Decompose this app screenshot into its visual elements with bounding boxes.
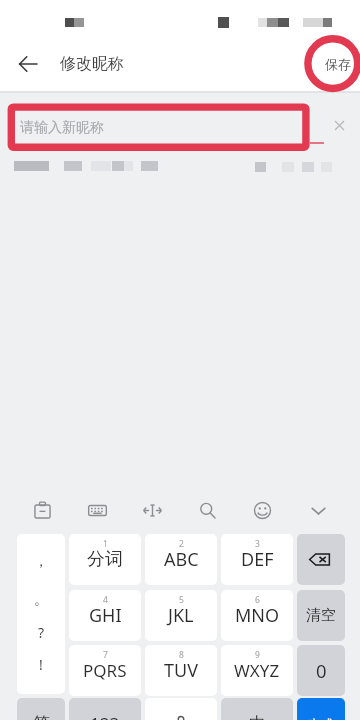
staticText: 5 [179, 594, 184, 606]
staticText: WXYZ [234, 659, 280, 682]
staticText: 123 [90, 712, 120, 720]
button[interactable]: Move cursor [130, 488, 174, 532]
staticText: 7 [103, 649, 108, 661]
staticText: 8 [179, 649, 184, 661]
staticText: DEF [241, 547, 274, 572]
button[interactable]: Backspace [297, 534, 345, 585]
button[interactable]: TUV [145, 645, 217, 696]
button[interactable]: 定式 [297, 698, 345, 720]
staticText: 符 [33, 713, 50, 720]
staticText: MNO [235, 603, 280, 628]
button[interactable]: Clipboard [20, 488, 64, 532]
staticText: 。 [34, 591, 48, 607]
button[interactable]: 中 [221, 698, 293, 720]
button[interactable]: Back [4, 40, 52, 88]
staticText: JKL [168, 603, 194, 628]
button[interactable]: Voice input [145, 698, 217, 720]
button[interactable]: Search [185, 488, 229, 532]
staticText: ABC [164, 547, 199, 572]
button[interactable]: Clear text [323, 109, 355, 141]
button[interactable]: 保存 [315, 35, 360, 92]
button[interactable]: 123 [69, 698, 141, 720]
staticText: 中 [249, 713, 266, 720]
staticText: 保存 [325, 56, 351, 72]
staticText: 修改昵称 [60, 54, 124, 74]
staticText: 3 [255, 538, 260, 550]
button[interactable]: Keyboard layout [75, 488, 119, 532]
button[interactable]: WXYZ [221, 645, 293, 696]
staticText: 0 [316, 658, 327, 683]
staticText: 请输入新昵称 [20, 119, 104, 137]
staticText: PQRS [83, 659, 127, 682]
button[interactable]: PQRS [69, 645, 141, 696]
staticText: 9 [255, 649, 260, 661]
staticText: GHI [89, 603, 122, 628]
staticText: 清空 [306, 606, 336, 625]
staticText: 定式 [308, 716, 334, 720]
button[interactable]: DEF [221, 534, 293, 585]
button[interactable]: 清空 [297, 590, 345, 641]
staticText: 4 [103, 594, 108, 606]
button[interactable]: 分词 [69, 534, 141, 585]
staticText: ! [39, 655, 43, 671]
staticText: 2 [179, 538, 184, 550]
button[interactable]: 符 [17, 698, 65, 720]
button[interactable]: ABC [145, 534, 217, 585]
button[interactable]: 0 [297, 645, 345, 696]
staticText: 分词 [87, 548, 123, 571]
button[interactable]: JKL [145, 590, 217, 641]
staticText: TUV [164, 658, 198, 683]
staticText: 1 [103, 538, 108, 550]
staticText: 6 [255, 594, 260, 606]
staticText: ， [34, 553, 48, 569]
button[interactable]: ， [17, 534, 65, 694]
staticText: ? [38, 623, 45, 639]
button[interactable]: Emoji [240, 488, 284, 532]
button[interactable]: GHI [69, 590, 141, 641]
button[interactable]: MNO [221, 590, 293, 641]
button[interactable]: Hide keyboard [296, 488, 340, 532]
